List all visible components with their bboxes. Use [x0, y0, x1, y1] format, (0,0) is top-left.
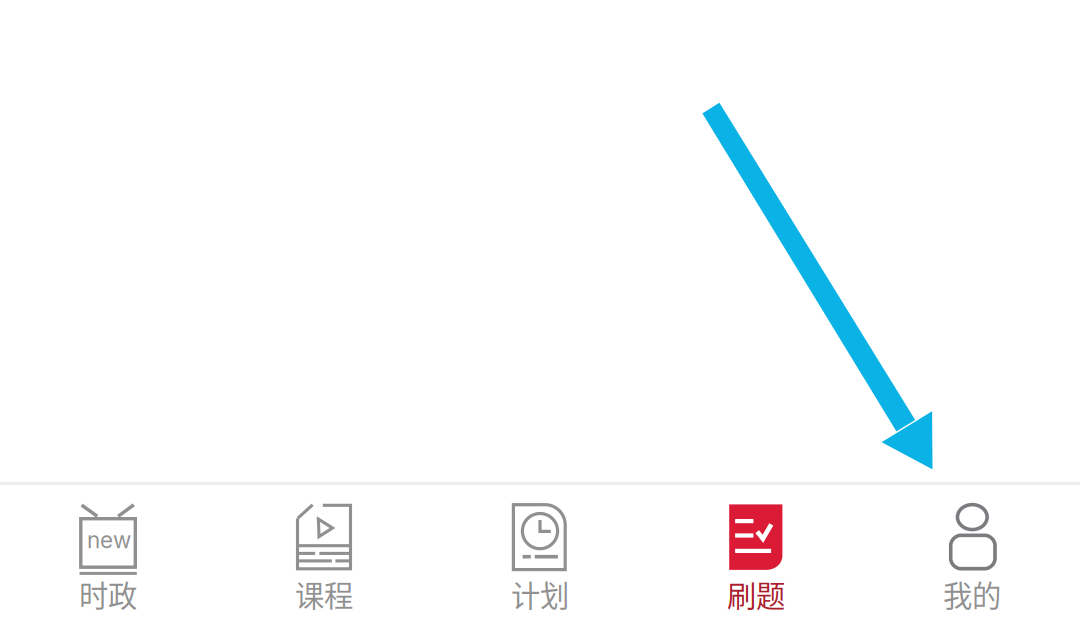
staticText: 我的 [943, 573, 1001, 615]
button[interactable]: 刷题 [648, 485, 864, 626]
staticText: 计划 [511, 573, 569, 615]
button[interactable]: 课程 [216, 485, 432, 626]
staticText: 课程 [295, 573, 353, 615]
staticText: 时政 [79, 573, 137, 615]
button[interactable]: new [0, 485, 216, 626]
staticText: 刷题 [727, 573, 785, 615]
button[interactable]: 计划 [432, 485, 648, 626]
staticText: new [87, 526, 131, 554]
button[interactable]: 我的 [864, 485, 1080, 626]
